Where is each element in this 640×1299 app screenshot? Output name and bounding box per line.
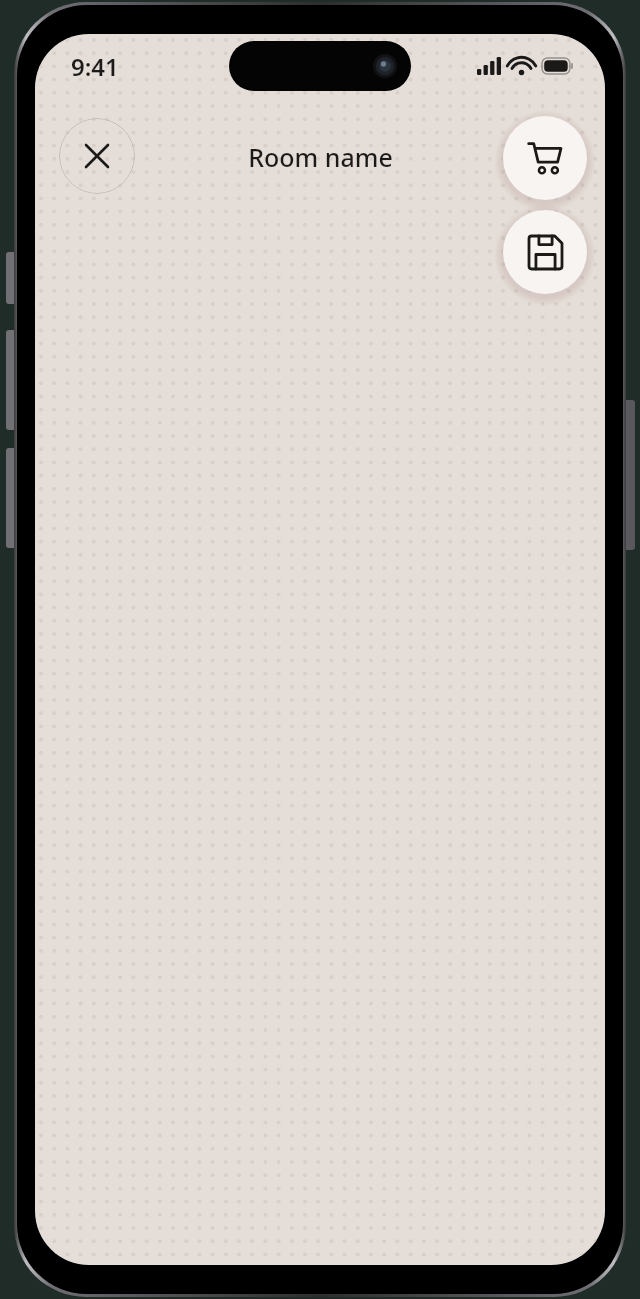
staticText: 9:41 [71,50,119,83]
staticText: Room name [248,140,393,174]
button[interactable]: Save [503,210,587,294]
button[interactable]: Shopping cart [503,116,587,200]
button[interactable]: Close [59,118,135,194]
